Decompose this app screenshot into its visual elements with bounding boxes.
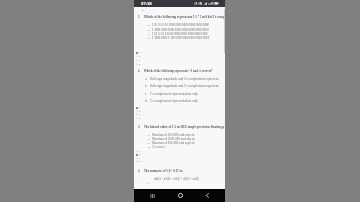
staticText: The biased value of 1.5 in IEEE single p… bbox=[144, 125, 225, 129]
staticText: ○ bbox=[136, 157, 138, 159]
staticText: d. bbox=[139, 63, 141, 66]
staticText: 3. bbox=[138, 125, 141, 129]
staticText: a. bbox=[148, 133, 151, 136]
staticText: Which of the following represents 1.5 * … bbox=[144, 15, 225, 19]
staticText: b. bbox=[148, 137, 151, 140]
button[interactable]: Recent apps bbox=[143, 189, 161, 202]
staticText: Mantissa of 100..000 and exp val bbox=[152, 141, 195, 145]
staticText: a. bbox=[139, 150, 141, 153]
staticText: Which of the following represents +5 and… bbox=[144, 69, 213, 73]
staticText: d. bbox=[148, 36, 151, 39]
staticText: a0(2) + a1(2) + a2(2) + a3(2) + a4(2) bbox=[154, 177, 200, 181]
staticText: The numeric of 1.0 + 0.25 is: bbox=[144, 169, 183, 173]
staticText: ○ bbox=[136, 110, 138, 112]
staticText: 1/4 bbox=[141, 9, 144, 12]
staticText: d. bbox=[139, 160, 141, 163]
staticText: ○ bbox=[136, 63, 138, 65]
staticText: ○ bbox=[136, 113, 138, 115]
staticText: Mantissa of 100..000 and exp val bbox=[152, 133, 195, 137]
staticText: a. bbox=[139, 106, 141, 109]
staticText: Both sign magnitude and 1's complement r… bbox=[150, 84, 219, 88]
staticText: b. bbox=[139, 110, 141, 113]
staticText: c. bbox=[139, 113, 141, 116]
staticText: 1 1000 0000 1 100 0000 0000 0000 0000 00… bbox=[152, 36, 210, 40]
staticText: a. bbox=[148, 23, 151, 26]
button[interactable]: Home bbox=[171, 189, 189, 202]
staticText: Mantissa of 1000..000 and exp va bbox=[152, 137, 195, 141]
staticText: c. bbox=[139, 157, 141, 160]
staticText: 2. bbox=[138, 69, 141, 73]
staticText: 07:28 bbox=[141, 1, 152, 7]
staticText: 2's com re bbox=[152, 145, 166, 149]
staticText: b. bbox=[139, 153, 141, 156]
staticText: 1. bbox=[138, 15, 141, 19]
staticText: ○ bbox=[136, 150, 138, 152]
staticText: c. bbox=[148, 32, 150, 35]
staticText: 1 01 0 1 0 10 1000 0000 0000 0000 0000 0… bbox=[152, 23, 210, 27]
staticText: 1 1000 0000 1000 0000 0000 0000 0000 000… bbox=[152, 28, 209, 32]
staticText: 1 01 0 1 0 0 1000 0000 0000 0000 0000 00… bbox=[152, 32, 208, 36]
staticText: b. bbox=[139, 55, 141, 58]
button[interactable]: Back bbox=[198, 189, 216, 202]
staticText: ○ bbox=[136, 59, 138, 61]
button[interactable]: Document page 1 of 4 bbox=[134, 0, 225, 202]
staticText: Both sign magnitude and 2's complement r… bbox=[150, 77, 219, 81]
staticText: b. bbox=[145, 84, 148, 88]
staticText: 2's complement representation only bbox=[150, 99, 198, 103]
staticText: 4. bbox=[138, 169, 141, 173]
staticText: a. bbox=[147, 182, 149, 185]
staticText: c. bbox=[145, 92, 147, 96]
staticText: ○ bbox=[136, 160, 138, 162]
staticText: ○ bbox=[136, 117, 138, 119]
staticText: d. bbox=[139, 117, 141, 120]
staticText: ○ bbox=[136, 55, 138, 57]
staticText: d. bbox=[148, 145, 151, 148]
staticText: d. bbox=[145, 99, 148, 103]
staticText: 1's complement representation only bbox=[150, 92, 198, 96]
staticText: c. bbox=[139, 59, 141, 62]
staticText: c. bbox=[148, 141, 150, 144]
staticText: a. bbox=[145, 77, 148, 81]
staticText: b. bbox=[148, 28, 151, 31]
staticText: a. bbox=[139, 51, 141, 54]
